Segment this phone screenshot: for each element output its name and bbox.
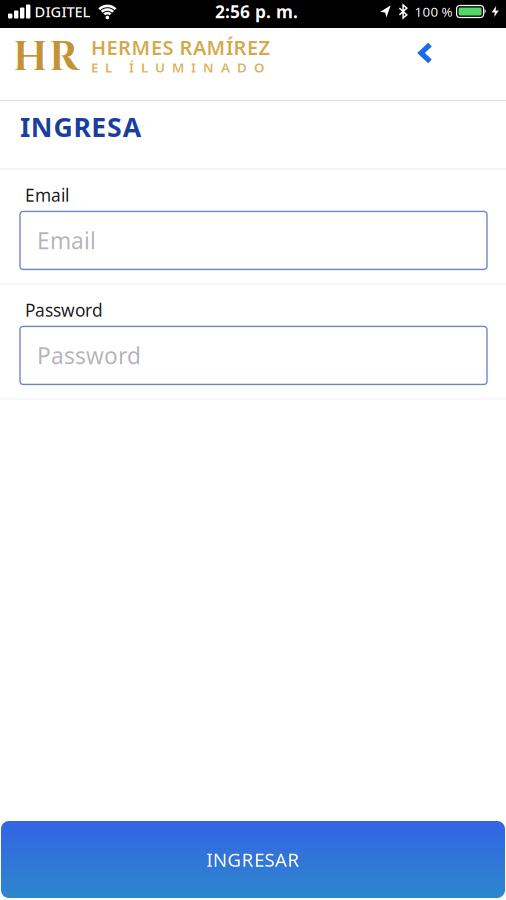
staticText: Email: [37, 225, 96, 255]
staticText: INGRESA: [20, 109, 141, 144]
staticText: 2:56 p. m.: [215, 0, 298, 23]
staticText: INGRESAR: [207, 847, 299, 872]
staticText: DIGITEL: [34, 2, 90, 21]
staticText: 100 %: [415, 3, 453, 20]
staticText: EL ÍLUMINADO: [91, 58, 264, 76]
staticText: Password: [25, 298, 103, 321]
button[interactable]: Email text field: [20, 211, 487, 269]
staticText: HERMES RAMÍREZ: [91, 34, 270, 60]
staticText: Password: [37, 340, 141, 370]
button[interactable]: Password text field: [20, 326, 487, 384]
staticText: Email: [25, 183, 69, 206]
staticText: HR: [13, 31, 79, 85]
button[interactable]: Back: [408, 36, 443, 74]
button[interactable]: INGRESAR: [1, 821, 505, 898]
